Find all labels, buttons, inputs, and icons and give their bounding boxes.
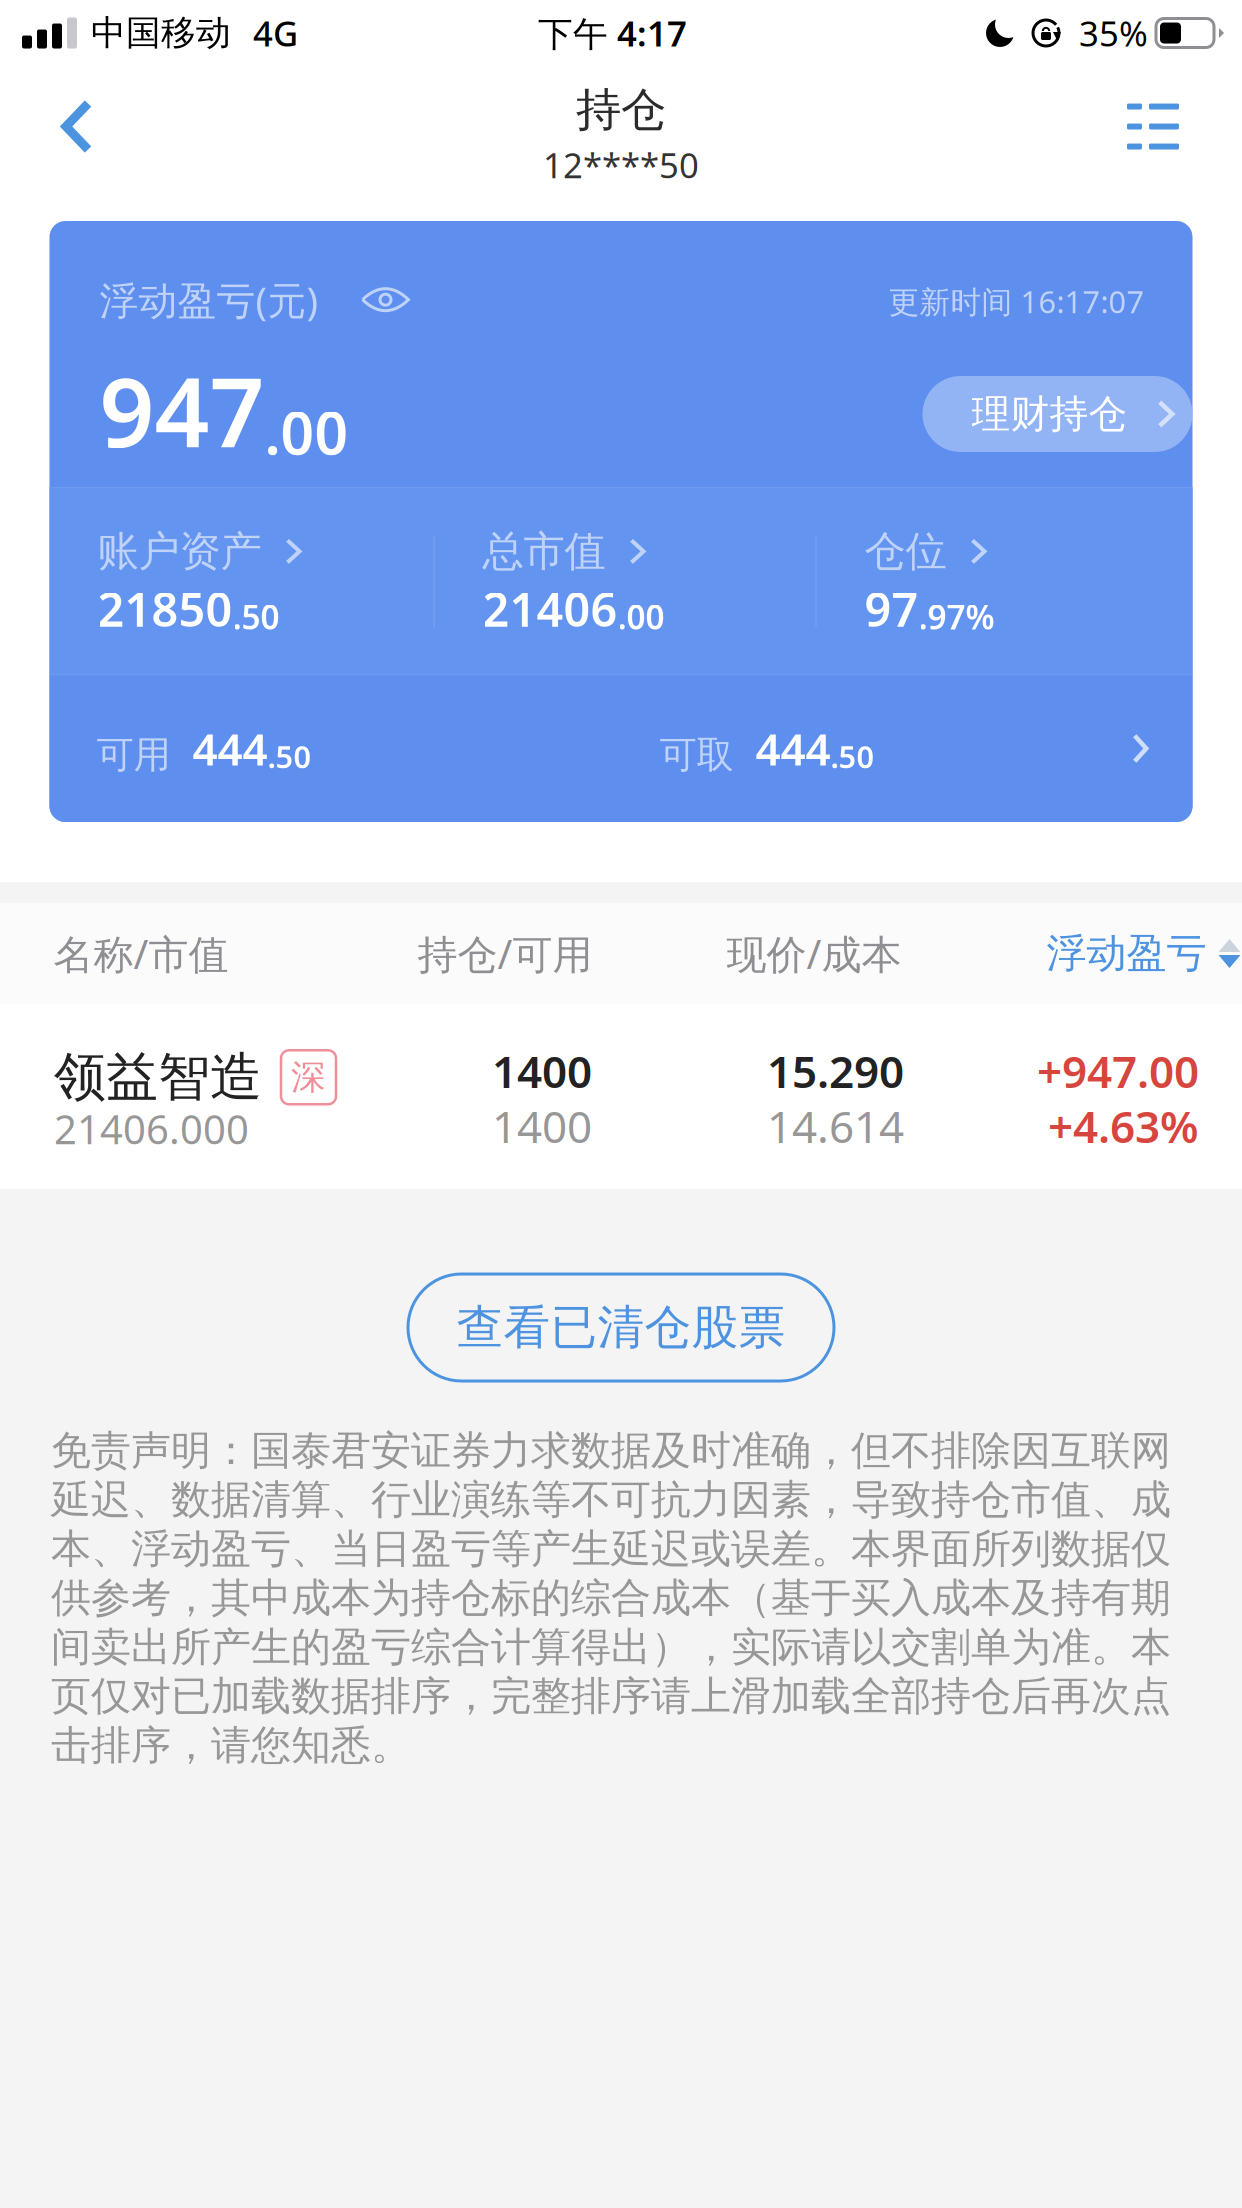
staticText: 12****50 — [543, 142, 699, 188]
staticText: 免责声明：国泰君安证券力求数据及时准确，但不排除因互联网延迟、数据清算、行业演练… — [51, 1426, 1171, 1770]
staticText: 35% — [1079, 10, 1148, 56]
staticText: 现价/成本 — [726, 927, 901, 980]
staticText: 444 — [755, 719, 830, 778]
staticText: .00 — [264, 393, 348, 471]
staticText: 总市值 — [482, 526, 605, 577]
button[interactable]: 账户资产 — [97, 526, 301, 577]
staticText: 21850 — [97, 578, 232, 640]
staticText: 下午 4:17 — [538, 10, 687, 56]
staticText: 领益智造 — [54, 1045, 262, 1109]
staticText: .00 — [617, 594, 664, 639]
staticText: 持仓 — [576, 82, 666, 138]
staticText: +947.00 — [1037, 1042, 1199, 1100]
button[interactable]: 仓位 — [864, 526, 986, 577]
button[interactable]: 理财持仓 — [922, 376, 1192, 452]
staticText: 可取 — [659, 732, 733, 778]
staticText: .97% — [918, 594, 994, 639]
staticText: .50 — [267, 736, 311, 777]
staticText: 1400 — [492, 1097, 592, 1155]
staticText: 查看已清仓股票 — [456, 1299, 785, 1356]
staticText: 深 — [291, 1056, 326, 1099]
staticText: +4.63% — [1048, 1097, 1199, 1155]
staticText: 4G — [253, 10, 298, 56]
staticText: 97 — [864, 578, 918, 640]
staticText: 更新时间 16:17:07 — [888, 281, 1144, 322]
staticText: 浮动盈亏(元) — [99, 274, 318, 325]
staticText: 21406.000 — [54, 1102, 249, 1155]
button[interactable]: 领益智造 — [0, 1004, 1242, 1189]
button[interactable]: Back — [0, 76, 154, 177]
staticText: 理财持仓 — [971, 390, 1127, 438]
staticText: 可用 — [96, 732, 170, 778]
button[interactable]: Toggle amount visibility — [360, 283, 410, 317]
staticText: 1400 — [492, 1042, 592, 1100]
staticText: 14.614 — [767, 1097, 904, 1155]
staticText: 中国移动 — [91, 12, 231, 54]
button[interactable]: 浮动盈亏 — [1046, 929, 1242, 978]
staticText: .50 — [232, 594, 279, 639]
staticText: 名称/市值 — [53, 927, 228, 980]
staticText: 21406 — [482, 578, 617, 640]
button[interactable]: 总市值 — [482, 526, 645, 577]
button[interactable]: List view options — [1064, 76, 1242, 177]
button[interactable]: 可用 — [49, 675, 1192, 822]
staticText: .50 — [830, 736, 874, 777]
staticText: 444 — [192, 719, 267, 778]
button[interactable]: 查看已清仓股票 — [408, 1274, 834, 1381]
staticText: 持仓/可用 — [417, 927, 592, 980]
staticText: 仓位 — [864, 526, 946, 577]
staticText: 947 — [99, 346, 264, 474]
staticText: 账户资产 — [97, 526, 261, 577]
staticText: 浮动盈亏 — [1046, 929, 1206, 978]
staticText: 15.290 — [767, 1042, 904, 1100]
